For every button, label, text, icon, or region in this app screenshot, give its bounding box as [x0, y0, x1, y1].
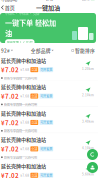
button[interactable]: 智能排序: [68, 47, 98, 54]
staticText: 立减: [31, 120, 37, 125]
button[interactable]: 延长壳牌中和加油站: [0, 80, 98, 106]
staticText: 最高优惠 1.2 元/升: [7, 40, 33, 44]
staticText: 中石化 · 中石油 · 壳牌: [5, 11, 39, 16]
staticText: 9:41: [46, 0, 53, 2]
staticText: ¥7.68: [20, 147, 29, 151]
staticText: 30%: [82, 0, 90, 2]
staticText: 全部品牌: [31, 47, 51, 54]
staticText: 立减: [31, 173, 37, 178]
button[interactable]: Profile: [87, 162, 98, 173]
staticText: 立减: [31, 67, 37, 72]
staticText: ¥7.02: [1, 118, 19, 127]
staticText: 新客专享直降一元券可用: [4, 75, 37, 80]
staticText: ¥7.68: [20, 120, 29, 125]
staticText: 可开发票: [40, 120, 52, 125]
staticText: 新客专享直降一元券可用: [4, 155, 37, 160]
staticText: 5.60km: [82, 172, 94, 176]
button[interactable]: 延长壳牌中和加油站: [0, 107, 98, 133]
staticText: 延长壳牌中和加油站: [1, 136, 46, 143]
button[interactable]: 延长壳牌中和加油站: [0, 133, 98, 159]
staticText: ¥7.68: [20, 67, 29, 72]
staticText: 可开发票: [40, 67, 52, 72]
staticText: 新客专享直降一元券可用: [4, 128, 37, 133]
staticText: 立减: [31, 94, 37, 98]
staticText: 延长壳牌中和加油站: [1, 56, 46, 64]
staticText: 3.40km: [82, 119, 94, 124]
staticText: 一键加油: [36, 3, 60, 12]
button[interactable]: 92#: [0, 47, 16, 54]
staticText: 智能排序: [75, 47, 95, 54]
button[interactable]: 全部品牌: [31, 47, 54, 54]
button[interactable]: 延长壳牌中和加油站: [0, 54, 98, 80]
staticText: 一键下单 轻松加油: [5, 17, 56, 38]
staticText: 92#: [1, 47, 10, 54]
staticText: ¥7.02: [1, 144, 19, 153]
staticText: ¥7.02: [1, 92, 19, 100]
staticText: ¥7.02: [1, 171, 19, 178]
staticText: 4.10km: [82, 146, 94, 150]
staticText: 2.10km: [82, 93, 94, 97]
staticText: 延长壳牌中和加油站: [1, 109, 46, 117]
staticText: 可开发票: [40, 173, 52, 178]
button[interactable]: 首页: [0, 2, 18, 13]
staticText: 首页: [5, 4, 15, 11]
staticText: 可开发票: [40, 147, 52, 151]
button[interactable]: 延长壳牌中和加油站: [0, 160, 98, 178]
button[interactable]: Refresh: [87, 149, 98, 160]
staticText: 可开发票: [40, 94, 52, 98]
staticText: 延长壳牌中和加油站: [1, 83, 46, 90]
staticText: ¥7.68: [20, 94, 29, 98]
staticText: 延长壳牌中和加油站: [1, 162, 46, 169]
staticText: 新客专享直降一元券可用: [4, 102, 37, 107]
staticText: 中国移动: [1, 0, 17, 2]
staticText: ¥7.68: [20, 173, 29, 178]
staticText: 立减: [31, 147, 37, 151]
staticText: ¥7.02: [1, 65, 19, 74]
staticText: 1.20km: [82, 66, 94, 71]
